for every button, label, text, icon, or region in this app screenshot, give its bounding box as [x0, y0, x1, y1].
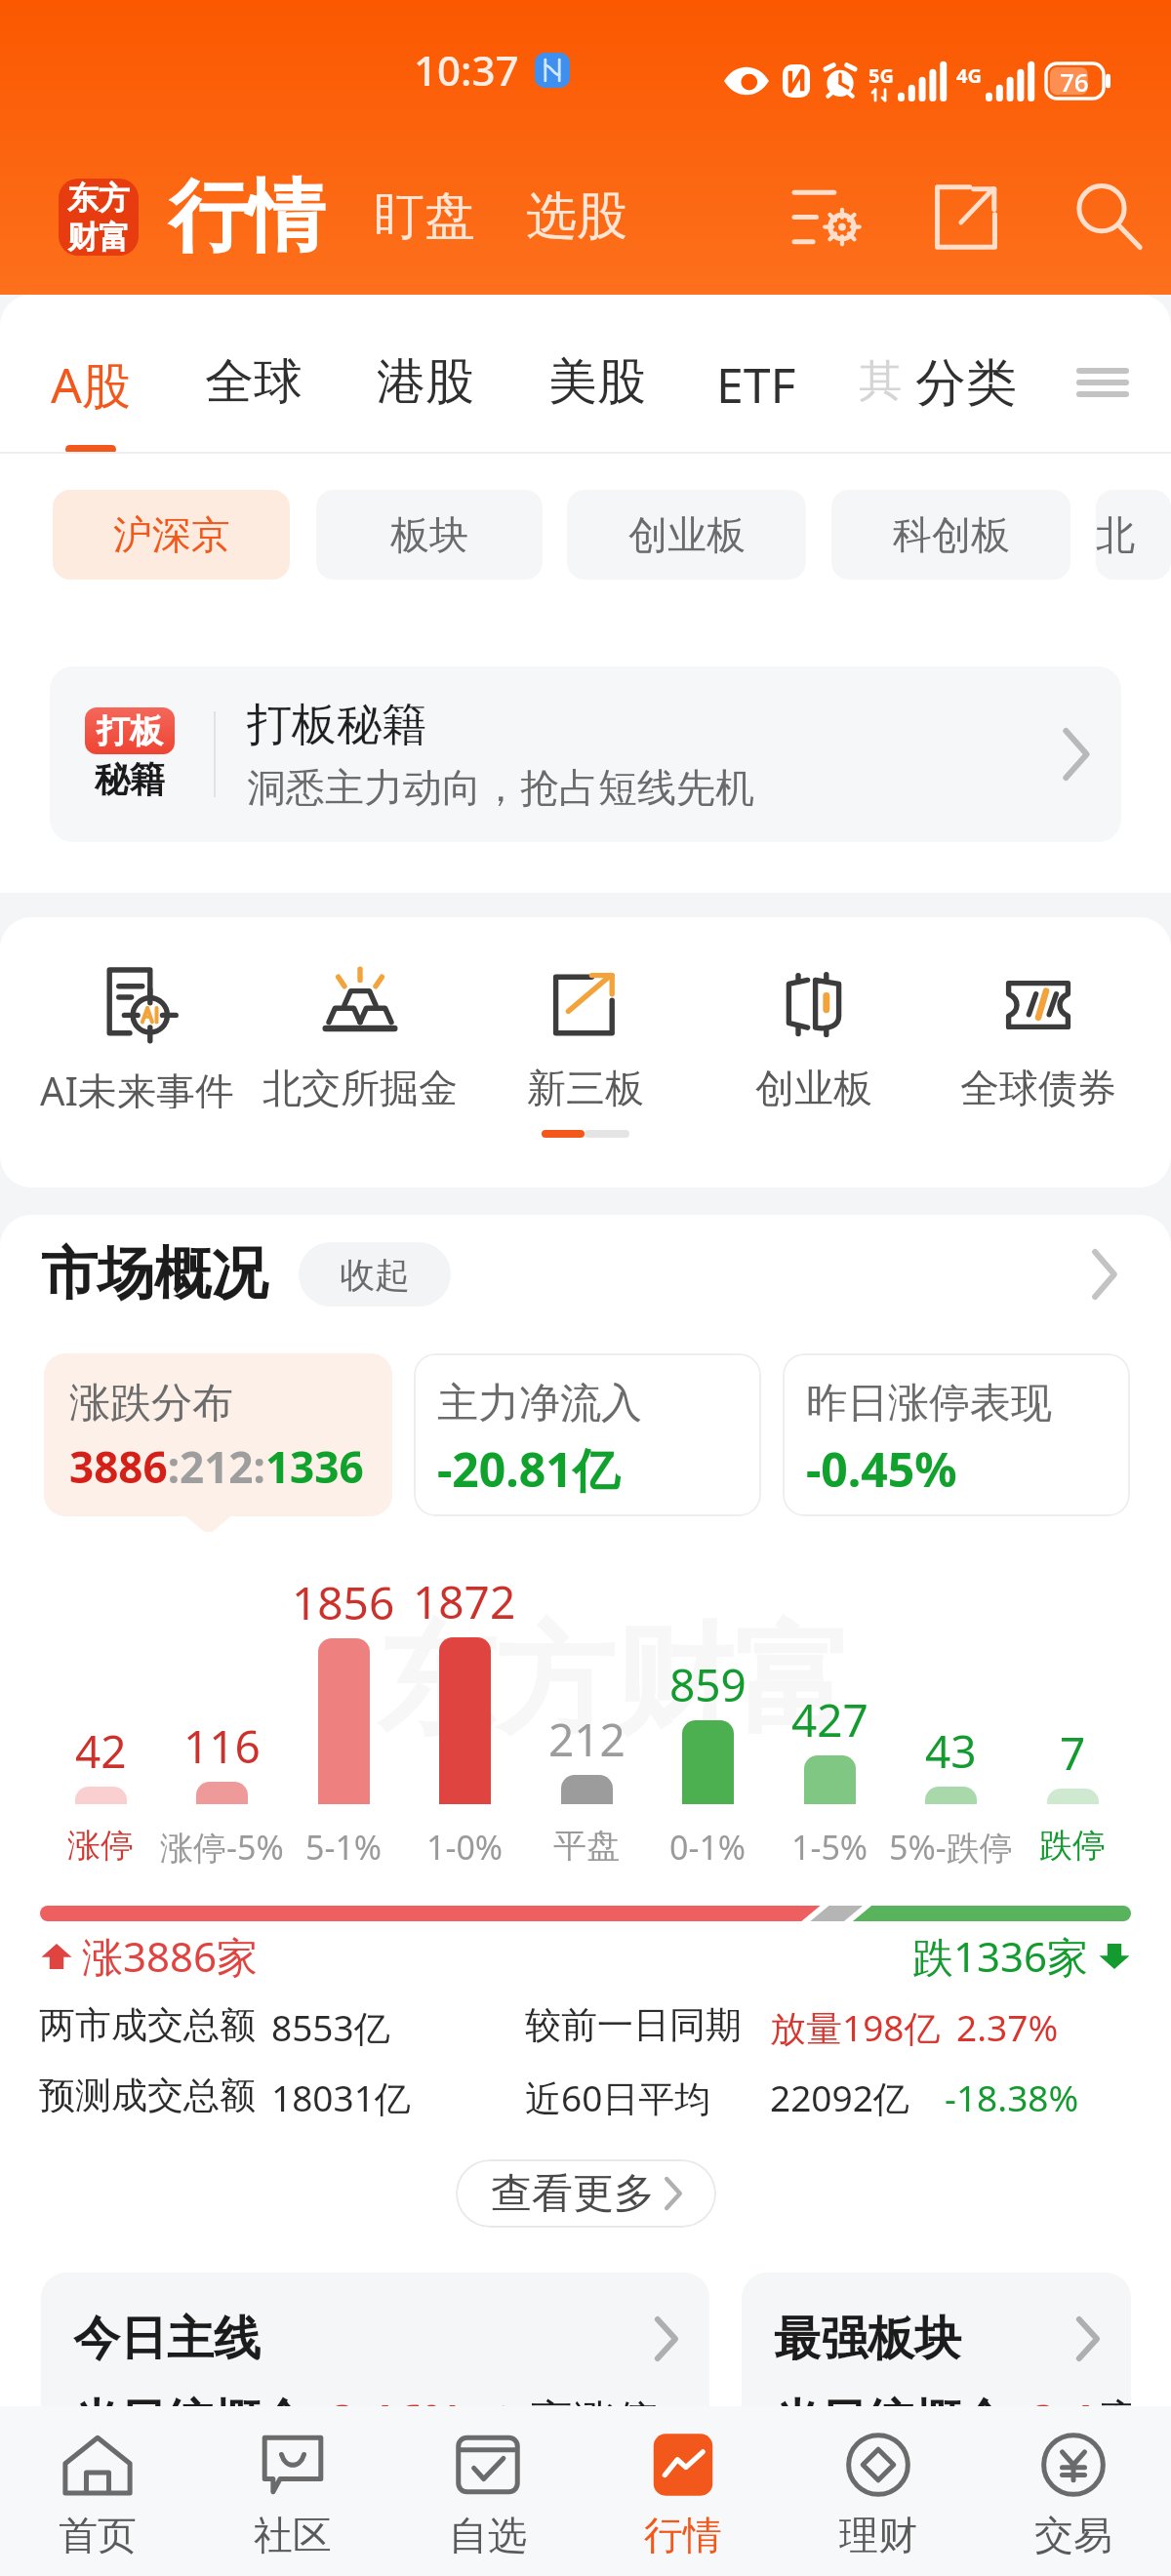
button[interactable]: 1856 [226, 1561, 461, 1873]
button[interactable]: 创业板 [567, 490, 806, 580]
button[interactable]: 427 [712, 1561, 947, 1873]
button[interactable]: 首页 [0, 2406, 195, 2576]
button[interactable]: 港股 [377, 351, 474, 413]
staticText: 其 [859, 354, 902, 408]
button[interactable]: 交易 [976, 2406, 1171, 2576]
button[interactable]: 212 [469, 1561, 704, 1873]
staticText: 港股 [377, 351, 474, 413]
button[interactable]: 选股 [526, 184, 627, 249]
button[interactable]: 创业板 [687, 966, 941, 1108]
button[interactable]: 43 [833, 1561, 1068, 1873]
button[interactable]: 1872 [347, 1561, 582, 1873]
staticText: 当日统概金 [73, 2393, 307, 2451]
button[interactable]: Filter settings [785, 174, 870, 260]
button[interactable]: 打板 [50, 666, 1121, 842]
staticText: 最强板块 [774, 2310, 961, 2368]
button[interactable]: 美股 [548, 351, 646, 413]
staticText: 打板秘籍 [247, 697, 426, 753]
staticText: 自选 [449, 2511, 527, 2559]
staticText: 427 [791, 1689, 868, 1751]
staticText: 859 [669, 1654, 747, 1715]
button[interactable]: 42 [0, 1561, 218, 1873]
button[interactable]: 7 [955, 1561, 1171, 1873]
staticText: 3886:212:1336 [69, 1437, 364, 1496]
staticText: 跌1336家 [912, 1928, 1089, 1984]
button[interactable]: 理财 [781, 2406, 976, 2576]
staticText: 涨跌分布 [69, 1378, 233, 1429]
staticText: -0.45% [806, 1437, 957, 1501]
staticText: 高涨停 [530, 2395, 659, 2448]
staticText: 东方财富 [377, 1607, 853, 1757]
staticText: 涨停-5% [160, 1825, 284, 1870]
button[interactable]: 全球债券 [911, 966, 1165, 1108]
button[interactable]: 859 [590, 1561, 825, 1873]
staticText: 76 [1060, 64, 1089, 99]
staticText: 4G [956, 62, 982, 89]
staticText: 理财 [839, 2511, 917, 2559]
button[interactable]: 北交所掘金 [233, 966, 487, 1108]
staticText: 沪深京 [113, 510, 230, 559]
button[interactable]: 昨日涨停表现 [783, 1353, 1130, 1516]
staticText: ↑ [487, 2398, 520, 2444]
staticText: 全球 [205, 351, 303, 413]
button[interactable]: 盯盘 [374, 184, 475, 249]
staticText: 创业板 [628, 510, 746, 559]
staticText: 平盘 [553, 1825, 620, 1867]
button[interactable]: Share [923, 174, 1009, 260]
staticText: 1-0% [426, 1825, 504, 1870]
button[interactable]: 分类 [915, 351, 1017, 416]
staticText: 查看更多 [491, 2168, 655, 2220]
staticText: 分类 [915, 351, 1017, 416]
staticText: 今日主线 [73, 2310, 261, 2368]
staticText: 较前一日同期 [525, 2002, 742, 2048]
button[interactable]: A股 [51, 351, 131, 454]
staticText: 0-1% [669, 1825, 747, 1870]
staticText: 7 [1060, 1722, 1086, 1784]
button[interactable]: 查看更多 [456, 2159, 716, 2228]
button[interactable]: 沪深京 [53, 490, 290, 580]
button[interactable]: Menu [1068, 347, 1138, 418]
button[interactable]: 最强板块 [742, 2273, 1131, 2576]
staticText: 8553亿 [271, 2002, 390, 2049]
staticText: 5-1% [305, 1825, 383, 1870]
button[interactable]: 涨跌分布 [44, 1353, 392, 1516]
staticText: 两市成交总额 [39, 2002, 256, 2048]
button[interactable]: 板块 [316, 490, 543, 580]
button[interactable]: 北交所 [1096, 490, 1171, 580]
button[interactable]: 全球 [205, 351, 303, 413]
staticText: AI未来事件 [40, 1064, 235, 1108]
button[interactable]: 社区 [195, 2406, 390, 2576]
staticText: 预测成交总额 [39, 2073, 256, 2118]
button[interactable]: 新三板 [459, 966, 712, 1108]
staticText: 43 [925, 1720, 977, 1782]
staticText: 5G [868, 62, 894, 89]
staticText: 市场概况 [41, 1238, 267, 1309]
staticText: 行情 [644, 2511, 722, 2559]
staticText: 东方 [67, 179, 130, 218]
staticText: 秘籍 [95, 757, 165, 801]
staticText: 跌停 [1039, 1825, 1106, 1867]
button[interactable]: 116 [104, 1561, 339, 1873]
button[interactable]: 行情 [169, 168, 325, 266]
button[interactable]: 东方 [59, 179, 139, 256]
button[interactable]: 收起 [299, 1242, 451, 1307]
staticText: A股 [51, 351, 131, 418]
button[interactable]: ETF [716, 351, 796, 418]
staticText: 科创板 [893, 510, 1010, 559]
button[interactable]: AI未来事件 [11, 966, 264, 1108]
staticText: 打板 [97, 710, 163, 752]
staticText: 5%-跌停 [889, 1825, 1013, 1870]
button[interactable]: 主力净流入 [414, 1353, 761, 1516]
button[interactable]: 今日主线 [41, 2273, 709, 2576]
button[interactable]: More market info [1071, 1241, 1138, 1308]
staticText: 放量198亿 [770, 2002, 941, 2049]
button[interactable]: 行情 [585, 2406, 781, 2576]
staticText: 2.37% [956, 2002, 1059, 2049]
button[interactable]: 自选 [390, 2406, 585, 2576]
staticText: 创业板 [755, 1064, 872, 1108]
button[interactable]: 科创板 [831, 490, 1070, 580]
staticText: 交易 [1034, 2511, 1112, 2559]
staticText: 10:37 [414, 42, 519, 98]
staticText: 主力净流入 [437, 1378, 642, 1429]
button[interactable]: Search [1066, 174, 1151, 260]
